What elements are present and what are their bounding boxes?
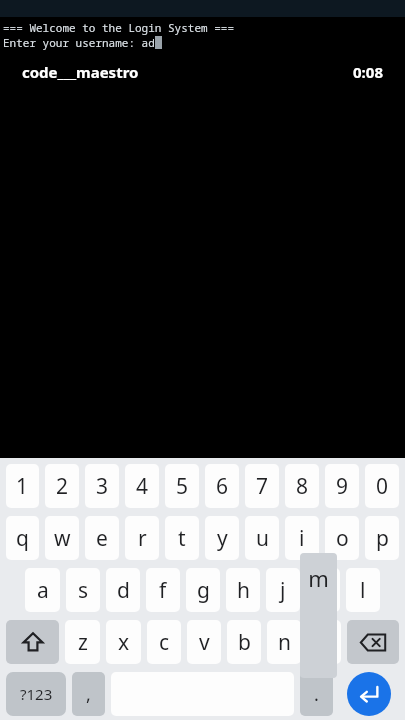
staticText: === Welcome to the Login System === — [3, 20, 234, 35]
button[interactable]: 6 — [205, 464, 239, 508]
staticText: f — [159, 576, 167, 605]
button[interactable]: 7 — [245, 464, 279, 508]
button[interactable]: t — [165, 516, 199, 560]
staticText: u — [256, 524, 269, 553]
button[interactable]: z — [65, 620, 100, 664]
button[interactable]: u — [245, 516, 279, 560]
staticText: code___maestro — [22, 62, 139, 82]
button[interactable]: c — [147, 620, 181, 664]
staticText: 6 — [216, 472, 229, 501]
button[interactable]: h — [226, 568, 260, 612]
staticText: s — [78, 576, 89, 605]
staticText: n — [278, 628, 291, 657]
staticText: d — [117, 576, 130, 605]
staticText: , — [86, 682, 91, 707]
button[interactable]: j — [266, 568, 300, 612]
staticText: . — [314, 682, 319, 707]
button[interactable]: 2 — [45, 464, 79, 508]
staticText: y — [217, 524, 228, 553]
button[interactable]: d — [106, 568, 140, 612]
staticText: o — [336, 524, 349, 553]
button[interactable]: 5 — [165, 464, 199, 508]
staticText: l — [360, 576, 366, 605]
staticText: e — [96, 524, 108, 553]
staticText: 5 — [176, 472, 189, 501]
button[interactable]: 4 — [125, 464, 159, 508]
button[interactable]: ?123 — [6, 672, 66, 716]
button[interactable]: l — [346, 568, 380, 612]
button[interactable]: Shift — [6, 620, 59, 664]
button[interactable]: q — [6, 516, 39, 560]
staticText: 7 — [256, 472, 269, 501]
staticText: m — [308, 563, 329, 593]
staticText: p — [376, 524, 389, 553]
staticText: 0 — [376, 472, 389, 501]
button[interactable]: Backspace — [347, 620, 399, 664]
staticText: c — [159, 628, 170, 657]
button[interactable]: x — [106, 620, 141, 664]
button[interactable]: i — [285, 516, 319, 560]
staticText: 9 — [336, 472, 349, 501]
staticText: z — [78, 628, 88, 657]
button[interactable]: a — [25, 568, 60, 612]
staticText: 2 — [56, 472, 69, 501]
staticText: i — [299, 524, 305, 553]
button[interactable]: 3 — [85, 464, 119, 508]
button[interactable]: . — [300, 672, 333, 716]
button[interactable]: e — [85, 516, 119, 560]
button[interactable]: n — [267, 620, 301, 664]
staticText: h — [237, 576, 250, 605]
button[interactable]: y — [205, 516, 239, 560]
staticText: q — [16, 524, 29, 553]
staticText: Enter your username: ad — [3, 35, 155, 50]
staticText: j — [280, 576, 286, 605]
button[interactable]: o — [325, 516, 359, 560]
button[interactable]: m — [307, 620, 341, 664]
staticText: 8 — [296, 472, 309, 501]
staticText: ?123 — [20, 684, 53, 704]
staticText: g — [197, 576, 210, 605]
button[interactable]: g — [186, 568, 220, 612]
staticText: 4 — [136, 472, 149, 501]
button[interactable]: w — [45, 516, 79, 560]
staticText: r — [138, 524, 147, 553]
staticText: a — [37, 576, 49, 605]
button[interactable]: b — [227, 620, 261, 664]
staticText: 0:08 — [353, 62, 383, 82]
button[interactable]: f — [146, 568, 180, 612]
staticText: k — [317, 576, 329, 605]
staticText: v — [199, 628, 210, 657]
button[interactable]: r — [125, 516, 159, 560]
staticText: t — [178, 524, 186, 553]
staticText: 3 — [96, 472, 109, 501]
button[interactable]: p — [365, 516, 399, 560]
staticText: w — [54, 524, 71, 553]
button[interactable]: k — [306, 568, 340, 612]
staticText: b — [238, 628, 251, 657]
button[interactable]: Enter — [347, 672, 391, 716]
staticText: 1 — [16, 472, 29, 501]
button[interactable]: 9 — [325, 464, 359, 508]
button[interactable]: v — [187, 620, 221, 664]
button[interactable]: 1 — [6, 464, 39, 508]
button[interactable]: 0 — [365, 464, 399, 508]
staticText: x — [118, 628, 130, 657]
button[interactable]: , — [72, 672, 105, 716]
button[interactable]: 8 — [285, 464, 319, 508]
button[interactable]: s — [66, 568, 100, 612]
